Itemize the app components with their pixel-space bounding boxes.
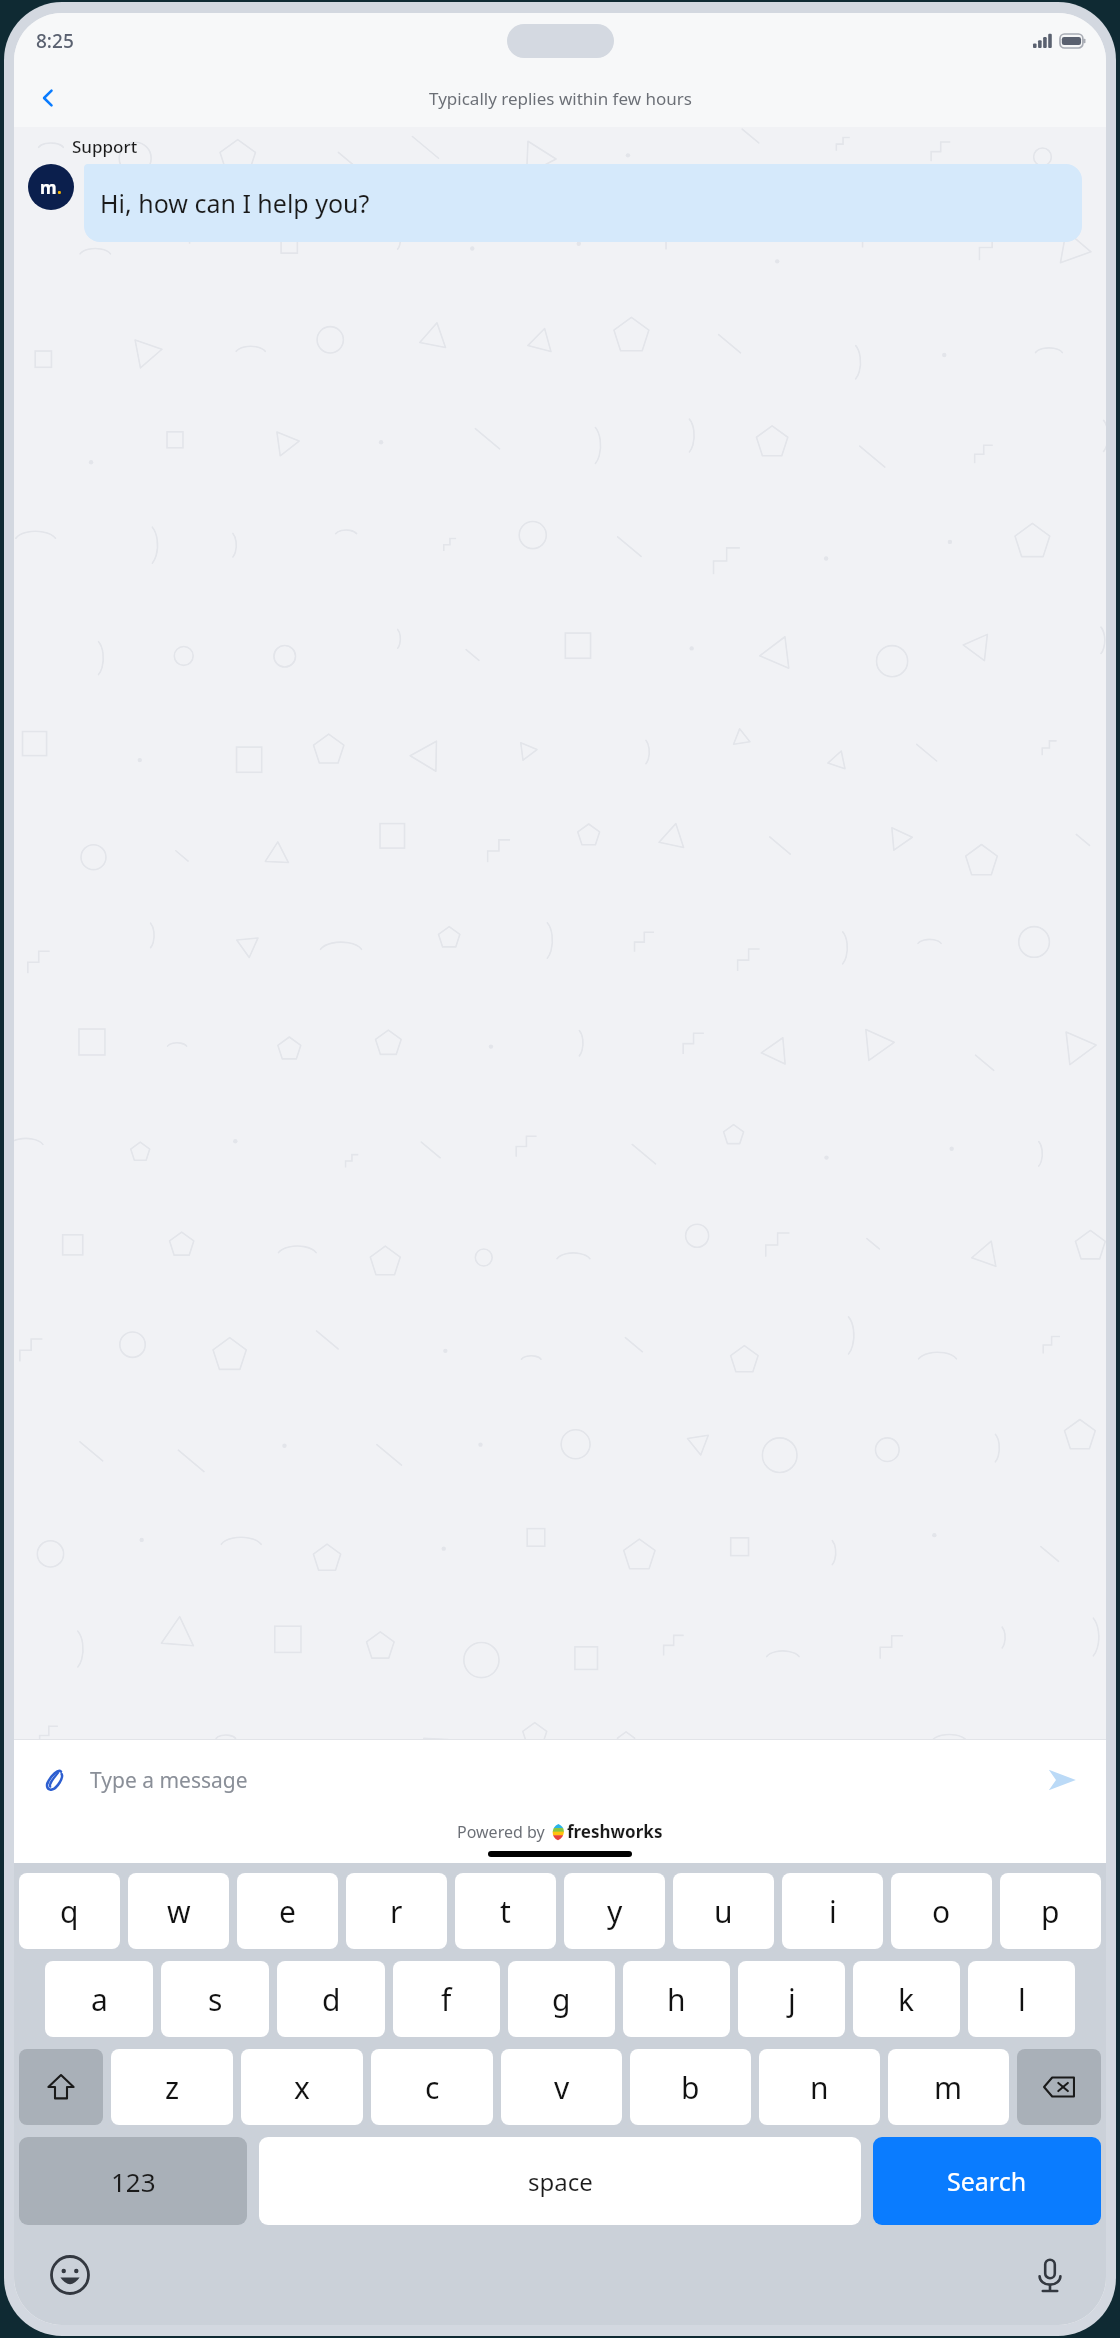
staticText: n xyxy=(810,2067,829,2108)
staticText: Typically replies within few hours xyxy=(429,87,692,110)
button[interactable]: w xyxy=(128,1873,229,1949)
button[interactable]: Send xyxy=(1036,1754,1088,1806)
button[interactable]: r xyxy=(346,1873,447,1949)
button[interactable]: m xyxy=(888,2049,1009,2125)
staticText: Hi, how can I help you? xyxy=(100,186,370,220)
staticText: l xyxy=(1018,1979,1026,2020)
button[interactable]: i xyxy=(782,1873,883,1949)
staticText: h xyxy=(667,1979,686,2020)
button[interactable]: Attach file xyxy=(32,1757,78,1803)
staticText: d xyxy=(322,1979,341,2020)
button[interactable]: c xyxy=(371,2049,493,2125)
staticText: e xyxy=(279,1891,296,1932)
button[interactable]: Search xyxy=(873,2137,1101,2225)
staticText: z xyxy=(165,2067,180,2108)
staticText: Powered by xyxy=(457,1821,549,1843)
button[interactable]: g xyxy=(508,1961,615,2037)
staticText: . xyxy=(57,176,62,199)
staticText: b xyxy=(681,2067,700,2108)
staticText: freshworks xyxy=(567,1820,663,1843)
button[interactable]: Hi, how can I help you? xyxy=(84,164,1082,242)
staticText: u xyxy=(714,1891,733,1932)
button[interactable]: space xyxy=(259,2137,861,2225)
button[interactable]: t xyxy=(455,1873,556,1949)
staticText: k xyxy=(898,1979,915,2020)
staticText: x xyxy=(294,2067,310,2108)
button[interactable]: p xyxy=(1000,1873,1101,1949)
button[interactable]: e xyxy=(237,1873,338,1949)
staticText: i xyxy=(829,1891,837,1932)
button[interactable]: x xyxy=(241,2049,363,2125)
staticText: t xyxy=(500,1891,511,1932)
button[interactable]: n xyxy=(759,2049,880,2125)
button[interactable]: s xyxy=(161,1961,269,2037)
button[interactable]: q xyxy=(19,1873,120,1949)
staticText: m xyxy=(40,176,57,199)
button[interactable]: 123 xyxy=(19,2137,247,2225)
staticText: 8:25 xyxy=(36,28,74,54)
staticText: y xyxy=(607,1891,623,1932)
button[interactable]: o xyxy=(891,1873,992,1949)
staticText: Search xyxy=(947,2164,1027,2198)
button[interactable]: k xyxy=(853,1961,960,2037)
button[interactable]: Shift xyxy=(19,2049,103,2125)
button[interactable]: Voice input xyxy=(1024,2249,1076,2301)
button[interactable]: h xyxy=(623,1961,730,2037)
staticText: a xyxy=(91,1979,108,2020)
button[interactable]: a xyxy=(45,1961,153,2037)
button[interactable]: z xyxy=(111,2049,233,2125)
staticText: p xyxy=(1041,1891,1060,1932)
button[interactable]: Backspace xyxy=(1017,2049,1101,2125)
button[interactable]: d xyxy=(277,1961,385,2037)
button[interactable]: u xyxy=(673,1873,774,1949)
staticText: 123 xyxy=(111,2164,156,2199)
staticText: c xyxy=(425,2067,440,2108)
staticText: r xyxy=(390,1891,403,1932)
staticText: m xyxy=(934,2067,963,2108)
button[interactable]: b xyxy=(630,2049,751,2125)
button[interactable]: Back xyxy=(24,74,72,122)
staticText: f xyxy=(441,1979,452,2020)
button[interactable]: j xyxy=(738,1961,845,2037)
button[interactable]: Emoji xyxy=(44,2249,96,2301)
staticText: w xyxy=(167,1891,191,1932)
button[interactable]: f xyxy=(393,1961,500,2037)
button[interactable]: Type a message xyxy=(90,1740,1036,1820)
staticText: space xyxy=(528,2165,593,2198)
button[interactable]: l xyxy=(968,1961,1075,2037)
button[interactable]: v xyxy=(501,2049,622,2125)
staticText: s xyxy=(208,1979,223,2020)
staticText: j xyxy=(788,1979,796,2020)
staticText: Type a message xyxy=(90,1766,248,1795)
staticText: o xyxy=(932,1891,951,1932)
staticText: q xyxy=(60,1891,79,1932)
staticText: v xyxy=(554,2067,570,2108)
button[interactable]: y xyxy=(564,1873,665,1949)
staticText: Support xyxy=(72,135,138,158)
staticText: g xyxy=(552,1979,571,2020)
